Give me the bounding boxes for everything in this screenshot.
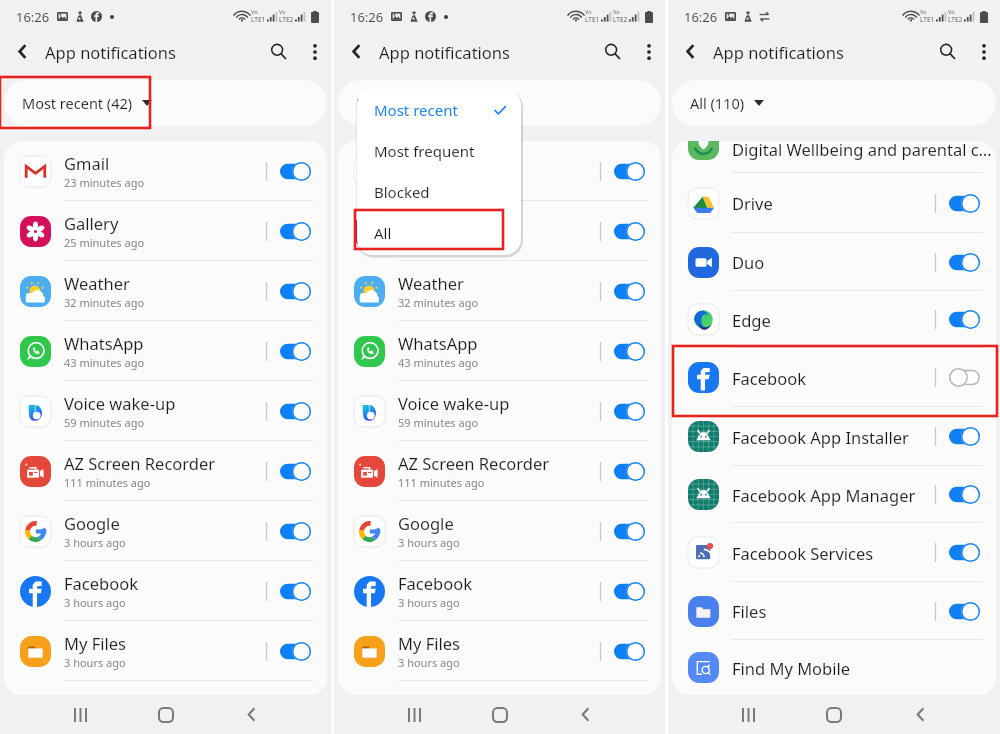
button[interactable]: Voice wake-up [4,381,327,441]
button[interactable]: Notification toggle [614,342,645,361]
button[interactable]: Home [812,695,856,734]
button[interactable]: Recent apps [58,695,102,734]
button[interactable]: Notification toggle [280,342,311,361]
button[interactable]: Most recent (42) [338,80,661,126]
staticText: Most recent (42) [356,93,467,113]
staticText: 16:26 [684,8,718,26]
button[interactable]: Notification toggle [614,462,645,481]
button[interactable]: Notification toggle [614,642,645,661]
button[interactable]: AZ Screen Recorder [338,441,661,501]
button[interactable]: Notification toggle [949,194,980,213]
staticText: App notifications [713,41,844,63]
button[interactable]: Notification toggle [614,222,645,241]
button[interactable]: Notification toggle [280,522,311,541]
button[interactable]: Notification toggle [614,282,645,301]
button[interactable]: Search [592,33,632,70]
button[interactable]: Facebook App Installer [672,407,996,466]
button[interactable]: Notification toggle [280,582,311,601]
button[interactable]: Digital Wellbeing and parental co.. [672,141,996,173]
button[interactable]: Google [4,501,327,561]
button[interactable]: All (110) [672,80,996,126]
button[interactable]: Navigate up [668,33,713,70]
button[interactable]: Back [229,695,273,734]
staticText: Facebook [398,572,472,594]
button[interactable]: Blocked [357,171,521,212]
button[interactable]: Facebook Services [672,523,996,582]
button[interactable]: AZ Screen Recorder [4,441,327,501]
staticText: LTE2 [948,15,963,24]
button[interactable]: Notification toggle [280,282,311,301]
button[interactable]: Notification toggle [280,162,311,181]
staticText: WhatsApp [64,332,144,354]
button[interactable]: Home [478,695,522,734]
button[interactable]: Notification toggle [614,402,645,421]
button[interactable]: Notification toggle [949,485,980,504]
button[interactable]: Notification toggle [280,222,311,241]
button[interactable]: WhatsApp [4,321,327,381]
button[interactable]: Facebook App Manager [672,466,996,523]
button[interactable]: Notification toggle [280,642,311,661]
button[interactable]: Duo [672,233,996,291]
button[interactable]: Find My Mobile [672,640,996,695]
staticText: 111 minutes ago [64,475,151,490]
button[interactable]: All [357,212,521,253]
button[interactable]: Most frequent [357,130,521,171]
button[interactable]: Notification toggle [949,368,980,387]
button[interactable]: Navigate up [0,33,45,70]
button[interactable]: Facebook [338,561,661,621]
button[interactable]: Recent apps [392,695,436,734]
staticText: All [374,223,392,243]
button[interactable]: More options [298,33,331,70]
button[interactable]: Home [144,695,188,734]
staticText: LTE1 [585,15,600,24]
staticText: Voice wake-up [398,392,510,414]
button[interactable]: Search [927,33,967,70]
staticText: Vo [613,8,620,15]
button[interactable]: WhatsApp [338,321,661,381]
button[interactable]: Recent apps [726,695,770,734]
staticText: Blocked [374,182,430,202]
button[interactable]: Google [338,501,661,561]
button[interactable]: Notification toggle [614,522,645,541]
button[interactable]: Facebook [672,348,996,407]
staticText: 23 minutes ago [398,175,479,190]
staticText: Google [398,512,454,534]
button[interactable]: Weather [4,261,327,321]
staticText: Google [64,512,120,534]
button[interactable]: Most recent [357,89,521,130]
button[interactable]: Gmail [4,141,327,201]
button[interactable]: Notification toggle [280,462,311,481]
button[interactable]: Drive [672,173,996,233]
button[interactable]: Notification toggle [949,602,980,621]
button[interactable]: Gallery [4,201,327,261]
button[interactable]: Navigate up [334,33,379,70]
staticText: AZ Screen Recorder [398,452,550,474]
button[interactable]: Edge [672,291,996,348]
button[interactable]: Search [258,33,298,70]
staticText: Vo [948,8,955,15]
button[interactable]: Back [563,695,607,734]
button[interactable]: Facebook [4,561,327,621]
button[interactable]: Weather [338,261,661,321]
button[interactable]: Notification toggle [280,402,311,421]
button[interactable]: Notification toggle [614,162,645,181]
button[interactable]: Notification toggle [949,253,980,272]
button[interactable]: Files [672,582,996,640]
staticText: 16:26 [350,8,384,26]
button[interactable]: Back [898,695,942,734]
button[interactable]: Gallery [338,201,661,261]
staticText: Files [732,600,767,622]
staticText: Facebook [732,367,806,389]
button[interactable]: Voice wake-up [338,381,661,441]
button[interactable]: My Files [338,621,661,681]
button[interactable]: Gmail [338,141,661,201]
button[interactable]: More options [632,33,665,70]
button[interactable]: Notification toggle [949,543,980,562]
button[interactable]: Notification toggle [949,310,980,329]
button[interactable]: Notification toggle [614,582,645,601]
button[interactable]: More options [967,33,1000,70]
button[interactable]: My Files [4,621,327,681]
button[interactable]: Notification toggle [949,427,980,446]
button[interactable]: Most recent (42) [4,80,327,126]
staticText: App notifications [45,41,176,63]
